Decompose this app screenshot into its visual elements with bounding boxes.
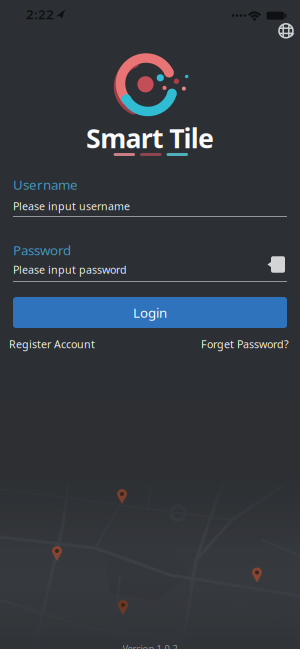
button[interactable] — [13, 177, 287, 219]
button[interactable] — [272, 17, 300, 45]
staticText: Forget Password? — [201, 337, 289, 351]
staticText: Username — [13, 176, 78, 193]
staticText: Register Account — [9, 337, 95, 351]
button[interactable] — [266, 252, 290, 276]
staticText: Please input username — [13, 199, 130, 213]
staticText: Password — [13, 241, 71, 259]
button[interactable] — [13, 242, 253, 284]
staticText: Please input password — [13, 262, 127, 277]
button[interactable]: Register Account — [9, 337, 95, 351]
staticText: Smart Tile — [86, 120, 214, 156]
staticText: Version 1.0.2 — [122, 642, 177, 649]
button[interactable]: Login — [13, 297, 287, 328]
button[interactable]: Forget Password? — [201, 337, 289, 351]
staticText: Login — [133, 304, 167, 321]
staticText: 2:22 — [26, 5, 54, 23]
